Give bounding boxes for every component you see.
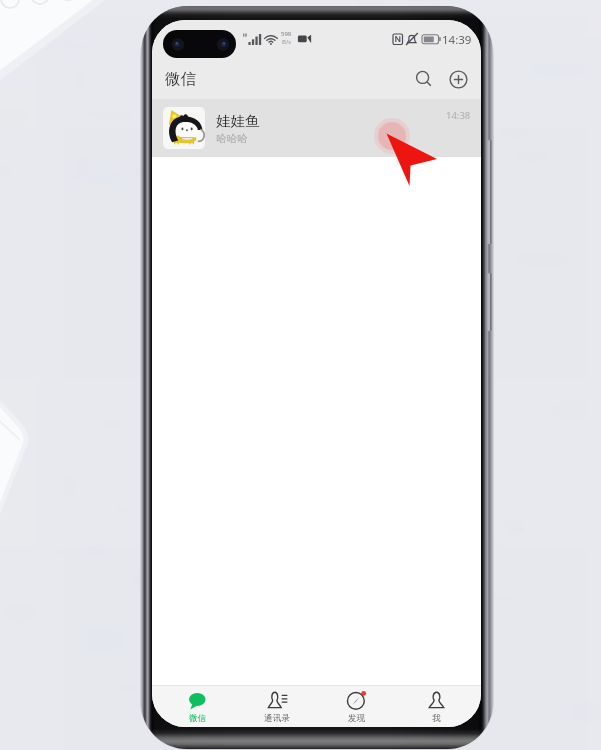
button[interactable]: Add [444, 65, 472, 93]
staticText: 599 [281, 30, 292, 38]
staticText: 哈哈哈 [216, 132, 248, 145]
staticText: 微信 [189, 713, 206, 724]
button[interactable]: 微信 [162, 686, 232, 727]
button[interactable]: Search [410, 65, 438, 93]
staticText: 我 [432, 713, 441, 724]
staticText: B/s [282, 38, 292, 46]
button[interactable]: 通讯录 [242, 686, 312, 727]
staticText: 微信 [165, 69, 196, 89]
staticText: 14:38 [446, 109, 471, 122]
staticText: 14:39 [442, 32, 472, 48]
button[interactable]: 发现 [321, 686, 391, 727]
staticText: 娃娃鱼 [216, 112, 260, 130]
staticText: 通讯录 [264, 713, 290, 724]
button[interactable]: 娃娃鱼 [152, 99, 481, 157]
button[interactable]: 我 [401, 686, 471, 727]
staticText: 发现 [348, 713, 365, 724]
